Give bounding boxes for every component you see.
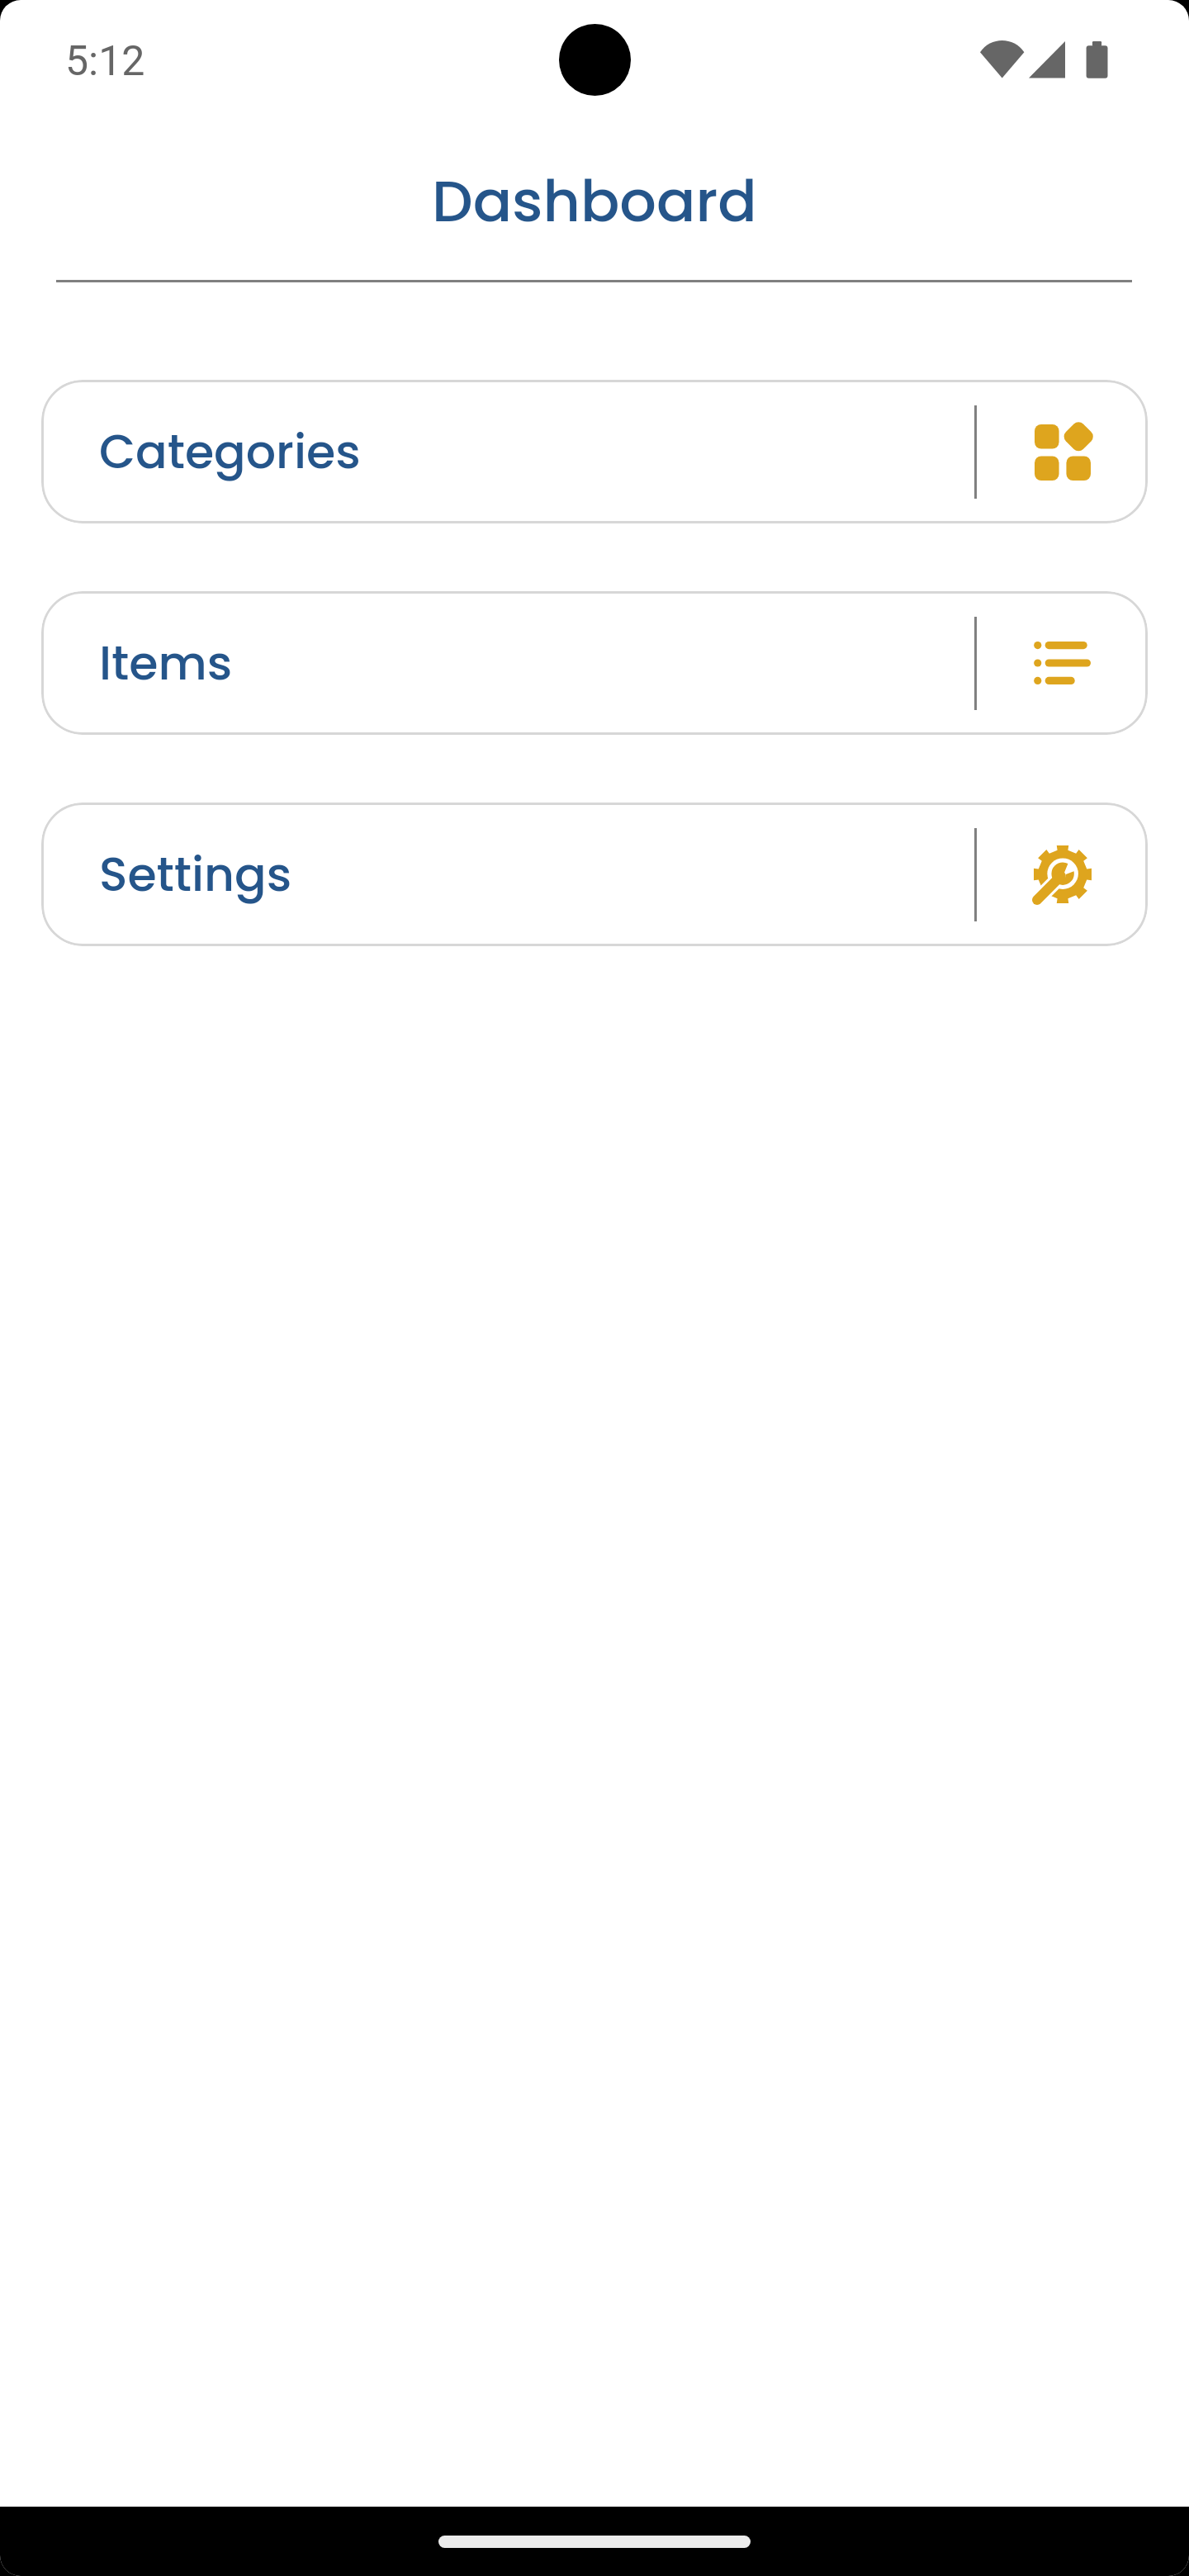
staticText: Dashboard xyxy=(432,160,757,241)
button[interactable]: Categories xyxy=(41,380,1148,523)
other: Items xyxy=(1034,642,1091,684)
other: Categories xyxy=(1035,424,1091,481)
staticText: Settings xyxy=(99,841,292,907)
other: Settings xyxy=(1034,845,1092,903)
button[interactable]: Settings xyxy=(41,803,1148,946)
staticText: Items xyxy=(99,630,233,696)
staticText: Categories xyxy=(99,419,361,485)
button[interactable]: Items xyxy=(41,591,1148,735)
staticText: 5:12 xyxy=(65,37,145,86)
